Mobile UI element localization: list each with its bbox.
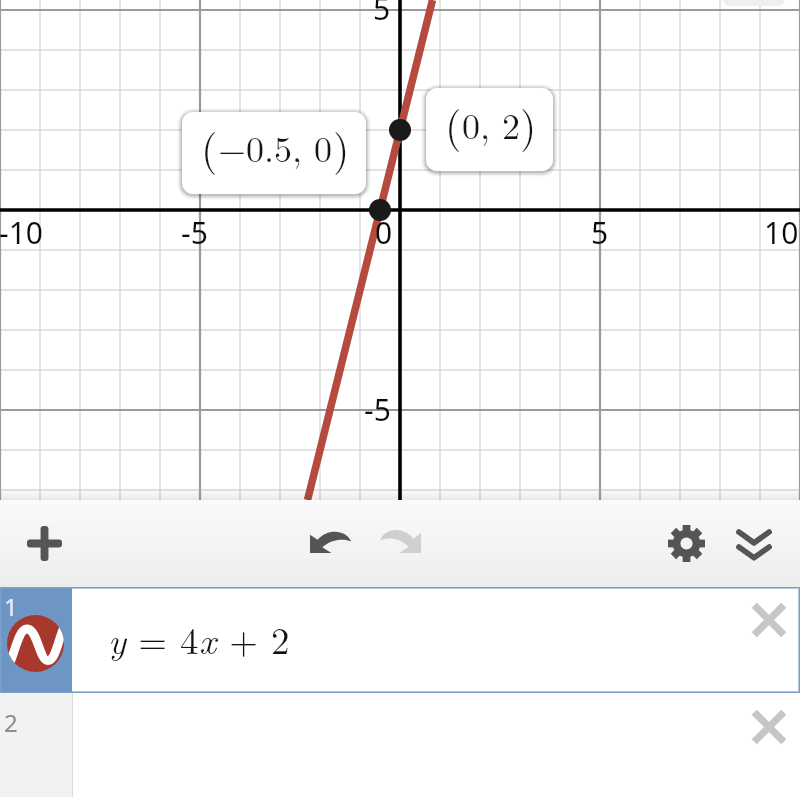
button[interactable]: 1 [0, 587, 800, 693]
staticText: + [217, 612, 271, 664]
staticText: y [108, 612, 126, 664]
staticText: -10 [0, 212, 43, 253]
button[interactable]: ( [426, 88, 553, 171]
button[interactable]: Delete expression [747, 598, 791, 642]
staticText: 4 [180, 612, 199, 664]
staticText: 0 [375, 212, 393, 253]
button[interactable]: Undo [310, 529, 351, 553]
staticText: 2 [4, 706, 18, 739]
button[interactable]: Redo [380, 527, 421, 553]
staticText: = [126, 612, 180, 664]
staticText: x [199, 612, 217, 664]
button[interactable]: ( [182, 112, 366, 194]
staticText: -5 [364, 389, 391, 430]
button[interactable]: 2 [0, 693, 800, 797]
staticText: 0, 2 [462, 98, 520, 149]
staticText: 2 [271, 612, 290, 664]
staticText: 5 [373, 0, 391, 29]
staticText: ) [520, 94, 537, 154]
staticText: 10 [764, 212, 799, 253]
staticText: 5 [591, 212, 609, 253]
button[interactable]: Delete expression [747, 705, 791, 749]
staticText: ( [201, 117, 218, 177]
staticText: -5 [181, 212, 208, 253]
staticText: −0.5, 0 [218, 121, 333, 172]
button[interactable]: Add expression [27, 526, 62, 561]
staticText: ) [333, 117, 350, 177]
staticText: 1 [4, 590, 18, 623]
button[interactable]: Collapse keypad [736, 529, 772, 565]
staticText: ( [445, 94, 462, 154]
button[interactable]: Settings [668, 525, 705, 562]
